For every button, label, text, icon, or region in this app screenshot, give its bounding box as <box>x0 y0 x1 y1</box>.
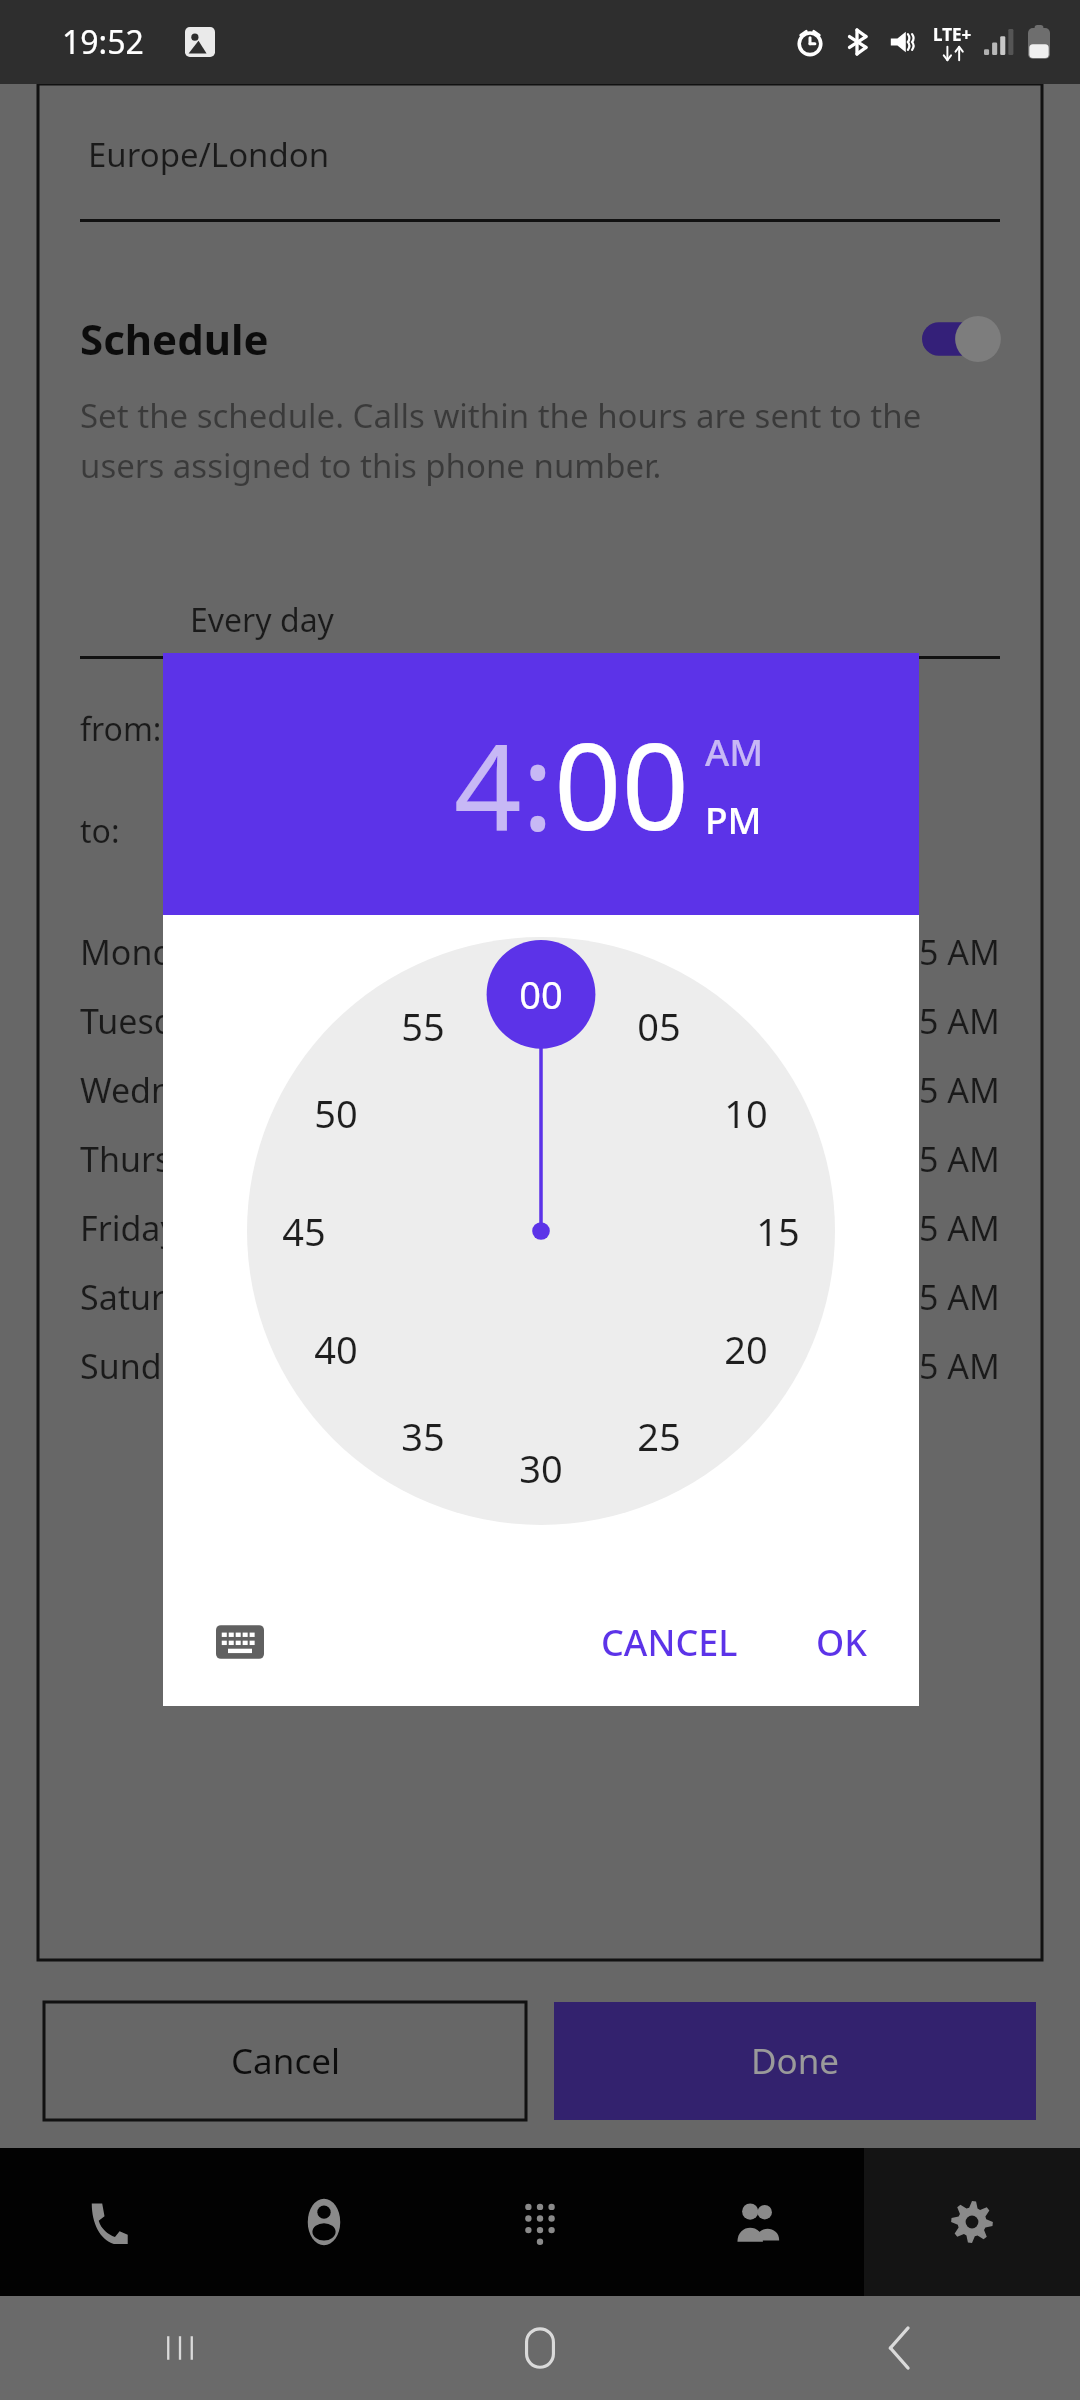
staticText: LTE+ <box>933 23 972 46</box>
staticText: 00 <box>519 968 563 1020</box>
button[interactable]: Calls <box>0 2148 216 2296</box>
staticText: Set the schedule. Calls within the hours… <box>80 393 1000 488</box>
button[interactable]: Account <box>216 2148 432 2296</box>
staticText: 30 <box>519 1442 563 1494</box>
staticText: : <box>522 704 554 865</box>
staticText: Tuesday <box>80 998 212 1044</box>
button[interactable]: 00 <box>247 937 835 1525</box>
staticText: 35 <box>401 1410 445 1462</box>
staticText: CANCEL <box>601 1618 738 1667</box>
staticText: 8:00 AM - 12:45 AM <box>694 1205 1000 1251</box>
button[interactable]: 4 <box>454 704 522 865</box>
button[interactable]: Contacts <box>648 2148 864 2296</box>
staticText: 19:52 <box>62 20 144 64</box>
staticText: Sunday <box>80 1343 199 1389</box>
staticText: Done <box>751 2037 840 2085</box>
button[interactable]: Switch to text input <box>209 1611 271 1673</box>
staticText: OK <box>816 1618 867 1667</box>
staticText: 8:00 AM - 12:45 AM <box>694 1343 1000 1389</box>
staticText: Monday <box>80 929 210 975</box>
staticText: Thursday <box>80 1136 229 1182</box>
staticText: 45 <box>282 1205 326 1257</box>
button[interactable]: Settings <box>864 2148 1080 2296</box>
button[interactable]: OK <box>794 1600 889 1685</box>
staticText: 10 <box>724 1087 768 1139</box>
staticText: 8:00 AM - 12:45 AM <box>694 1274 1000 1320</box>
button[interactable]: Dialpad <box>432 2148 648 2296</box>
button[interactable]: Done <box>554 2002 1036 2120</box>
button[interactable]: AM <box>705 726 764 776</box>
staticText: 8:00 AM - 12:45 AM <box>694 1136 1000 1182</box>
staticText: Cancel <box>231 2037 340 2085</box>
staticText: Saturday <box>80 1274 222 1320</box>
button[interactable]: Back <box>720 2296 1080 2400</box>
staticText: 55 <box>401 1000 445 1052</box>
staticText: 8:00 AM - 12:45 AM <box>694 998 1000 1044</box>
button[interactable]: PM <box>705 794 762 844</box>
staticText: Every day <box>190 598 334 642</box>
staticText: Schedule <box>80 310 269 367</box>
button[interactable]: Cancel <box>44 2002 526 2120</box>
button[interactable]: CANCEL <box>579 1600 760 1685</box>
staticText: 40 <box>314 1323 358 1375</box>
button[interactable]: Home <box>360 2296 720 2400</box>
staticText: Friday <box>80 1205 178 1251</box>
staticText: 05 <box>637 1000 681 1052</box>
staticText: 50 <box>314 1087 358 1139</box>
staticText: 20 <box>724 1323 768 1375</box>
staticText: from: <box>80 707 162 751</box>
button[interactable]: 00 <box>554 704 689 865</box>
staticText: 8:00 AM - 12:45 AM <box>694 929 1000 975</box>
staticText: 15 <box>756 1205 800 1257</box>
button[interactable]: Recents <box>0 2296 360 2400</box>
staticText: Europe/London <box>88 132 330 177</box>
staticText: Wednesday <box>80 1067 265 1113</box>
staticText: to: <box>80 809 120 853</box>
staticText: 25 <box>637 1410 681 1462</box>
staticText: 8:00 AM - 12:45 AM <box>694 1067 1000 1113</box>
